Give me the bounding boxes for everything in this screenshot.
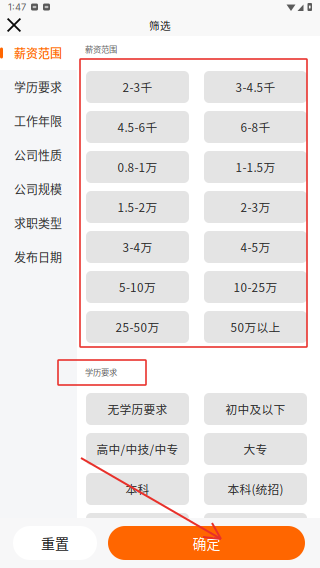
staticText: 公司性质: [14, 146, 62, 164]
button[interactable]: 4-5万: [204, 231, 307, 263]
button[interactable]: 重置: [13, 526, 97, 560]
staticText: 高中/中技/中专: [96, 440, 178, 457]
button[interactable]: 10-25万: [204, 271, 307, 303]
staticText: 重置: [41, 533, 69, 553]
button[interactable]: 1-1.5万: [204, 151, 307, 183]
staticText: 博士: [243, 520, 267, 537]
button[interactable]: 2-3千: [86, 71, 189, 103]
button[interactable]: 3-4.5千: [204, 71, 307, 103]
staticText: 薪资范围: [14, 44, 62, 62]
staticText: 10-25万: [233, 278, 277, 295]
button[interactable]: 薪资范围: [0, 36, 77, 70]
staticText: 确定: [192, 533, 220, 553]
staticText: 筛选: [149, 17, 171, 33]
button[interactable]: 公司性质: [0, 138, 77, 172]
button[interactable]: 1.5-2万: [86, 191, 189, 223]
staticText: 1:47: [8, 1, 26, 13]
button[interactable]: 无学历要求: [86, 393, 189, 425]
button[interactable]: 本科(统招): [204, 473, 307, 505]
staticText: 2-3万: [240, 198, 270, 215]
staticText: 求职类型: [14, 214, 62, 232]
button[interactable]: 关闭: [0, 14, 28, 36]
button[interactable]: 硕士: [86, 513, 189, 545]
button[interactable]: 发布日期: [0, 240, 77, 274]
button[interactable]: 初中及以下: [204, 393, 307, 425]
staticText: 公司规模: [14, 180, 62, 198]
staticText: 本科: [125, 480, 149, 497]
staticText: 50万以上: [230, 318, 280, 335]
staticText: 0.8-1万: [117, 158, 157, 175]
button[interactable]: 确定: [108, 526, 305, 560]
staticText: 25-50万: [115, 318, 159, 335]
staticText: 2-3千: [122, 78, 152, 95]
button[interactable]: 50万以上: [204, 311, 307, 343]
button[interactable]: 6-8千: [204, 111, 307, 143]
button[interactable]: 2-3万: [204, 191, 307, 223]
button[interactable]: 3-4万: [86, 231, 189, 263]
staticText: 4.5-6千: [117, 118, 157, 135]
staticText: 学历要求: [85, 366, 117, 378]
staticText: 学历要求: [14, 78, 62, 96]
staticText: 1-1.5万: [235, 158, 275, 175]
button[interactable]: 工作年限: [0, 104, 77, 138]
button[interactable]: 本科: [86, 473, 189, 505]
staticText: 初中及以下: [225, 400, 285, 417]
button[interactable]: 0.8-1万: [86, 151, 189, 183]
button[interactable]: 学历要求: [0, 70, 77, 104]
staticText: 6-8千: [240, 118, 270, 135]
button[interactable]: 4.5-6千: [86, 111, 189, 143]
button[interactable]: 博士: [204, 513, 307, 545]
staticText: 3-4万: [122, 238, 152, 255]
button[interactable]: 求职类型: [0, 206, 77, 240]
button[interactable]: 25-50万: [86, 311, 189, 343]
button[interactable]: 高中/中技/中专: [86, 433, 189, 465]
staticText: 硕士: [125, 520, 149, 537]
staticText: 发布日期: [14, 248, 62, 266]
staticText: 大专: [243, 440, 267, 457]
button[interactable]: 大专: [204, 433, 307, 465]
button[interactable]: 5-10万: [86, 271, 189, 303]
staticText: 本科(统招): [227, 480, 283, 497]
staticText: 工作年限: [14, 112, 62, 130]
staticText: 5-10万: [119, 278, 156, 295]
button[interactable]: 公司规模: [0, 172, 77, 206]
staticText: 4-5万: [240, 238, 270, 255]
staticText: 1.5-2万: [117, 198, 157, 215]
staticText: 无学历要求: [107, 400, 167, 417]
staticText: 薪资范围: [85, 43, 117, 55]
staticText: 3-4.5千: [235, 78, 275, 95]
